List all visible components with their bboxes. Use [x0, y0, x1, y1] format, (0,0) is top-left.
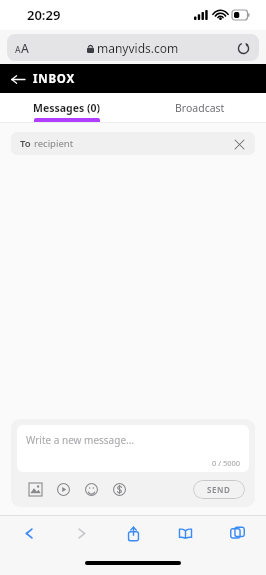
button[interactable]: Reload — [233, 38, 253, 58]
button[interactable]: Attach video — [53, 479, 73, 499]
button[interactable]: Clear recipient — [230, 135, 248, 153]
staticText: 20:29 — [27, 6, 61, 24]
staticText: 0 / 5000 — [212, 458, 241, 468]
button[interactable]: To — [11, 132, 255, 155]
button[interactable]: Broadcast — [133, 93, 266, 122]
button[interactable]: Back — [7, 68, 29, 90]
staticText: INBOX — [33, 71, 76, 87]
staticText: Messages (0) — [33, 101, 101, 115]
button[interactable]: Text size — [15, 40, 29, 56]
button[interactable]: Write a new message... — [17, 425, 249, 472]
staticText: Broadcast — [175, 101, 225, 115]
button[interactable]: Tabs — [222, 518, 252, 548]
staticText: manyvids.com — [97, 40, 179, 56]
button[interactable]: Forward — [66, 518, 96, 548]
staticText: SEND — [207, 484, 231, 495]
button[interactable]: SEND — [193, 480, 245, 499]
button[interactable]: Insert emoji — [81, 479, 101, 499]
staticText: Write a new message... — [26, 433, 135, 447]
button[interactable]: Messages (0) — [0, 93, 133, 122]
button[interactable]: Send tip — [109, 479, 129, 499]
button[interactable]: Bookmarks — [170, 518, 200, 548]
button[interactable]: Share — [118, 518, 148, 548]
staticText: To — [20, 137, 34, 150]
staticText: recipient — [34, 137, 74, 150]
button[interactable]: Text size — [7, 34, 259, 61]
staticText: A — [15, 44, 21, 56]
staticText: A — [21, 40, 29, 56]
button[interactable]: Back — [14, 518, 44, 548]
button[interactable]: Attach image — [25, 479, 45, 499]
